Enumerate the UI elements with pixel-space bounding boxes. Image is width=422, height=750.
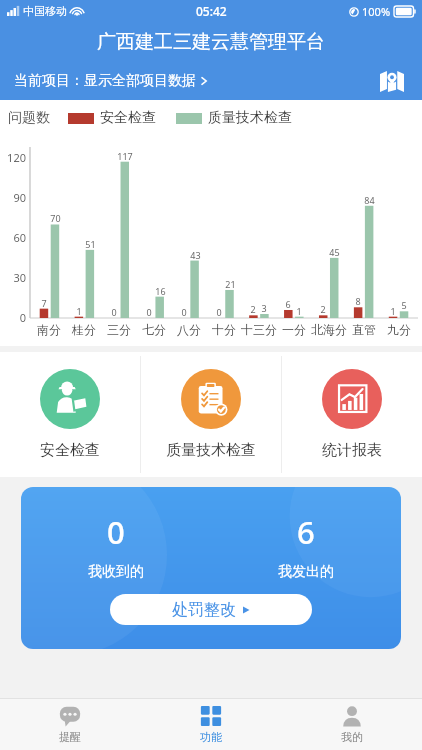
- staticText: 我发出的: [278, 563, 334, 581]
- staticText: 60: [13, 230, 26, 245]
- staticText: 中国移动: [23, 4, 67, 18]
- staticText: 一分: [282, 322, 306, 337]
- staticText: 16: [155, 285, 166, 297]
- staticText: 十分: [212, 322, 236, 337]
- button[interactable]: 功能: [140, 699, 281, 750]
- staticText: 问题数: [8, 109, 50, 127]
- staticText: 120: [7, 150, 26, 165]
- staticText: 7: [41, 297, 47, 309]
- staticText: 51: [85, 238, 96, 250]
- staticText: 30: [13, 270, 26, 285]
- button[interactable]: 我的: [281, 699, 422, 750]
- staticText: 0: [111, 306, 117, 318]
- staticText: 5: [401, 299, 407, 311]
- staticText: 100%: [362, 4, 391, 19]
- staticText: 广西建工三建云慧管理平台: [97, 30, 325, 54]
- staticText: 我收到的: [88, 563, 144, 581]
- staticText: 安全检查: [100, 109, 156, 127]
- staticText: 6: [285, 298, 291, 310]
- button[interactable]: 提醒: [0, 699, 140, 750]
- staticText: 70: [50, 212, 61, 224]
- button[interactable]: 质量技术检查: [141, 352, 281, 477]
- staticText: 七分: [142, 322, 166, 337]
- button[interactable]: 处罚整改: [110, 594, 312, 625]
- staticText: 功能: [200, 730, 222, 744]
- staticText: 提醒: [59, 730, 81, 744]
- staticText: 2: [320, 303, 326, 315]
- staticText: 统计报表: [322, 441, 382, 460]
- staticText: 三分: [107, 322, 131, 337]
- staticText: 质量技术检查: [208, 109, 292, 127]
- staticText: 0: [146, 306, 152, 318]
- button[interactable]: Map: [376, 65, 408, 97]
- staticText: 8: [355, 295, 361, 307]
- button[interactable]: 当前项目：显示全部项目数据: [14, 72, 210, 90]
- staticText: 0: [107, 511, 125, 553]
- staticText: 质量技术检查: [166, 441, 256, 460]
- staticText: 安全检查: [40, 441, 100, 460]
- staticText: 八分: [177, 322, 201, 337]
- staticText: 45: [329, 246, 340, 258]
- button[interactable]: 统计报表: [282, 352, 422, 477]
- staticText: 0: [216, 306, 222, 318]
- staticText: 0: [19, 310, 26, 325]
- button[interactable]: 安全检查: [0, 352, 140, 477]
- staticText: 南分: [37, 322, 61, 337]
- button[interactable]: 0: [21, 487, 401, 649]
- staticText: 43: [190, 249, 201, 261]
- staticText: 05:42: [196, 3, 227, 19]
- staticText: 桂分: [72, 322, 96, 337]
- staticText: 当前项目：显示全部项目数据: [14, 72, 196, 90]
- staticText: 21: [225, 278, 236, 290]
- staticText: 十三分: [241, 322, 277, 337]
- staticText: 2: [250, 303, 256, 315]
- staticText: 117: [117, 150, 133, 162]
- staticText: 0: [181, 306, 187, 318]
- staticText: 6: [297, 511, 315, 553]
- staticText: 北海分: [311, 322, 347, 337]
- staticText: 1: [390, 305, 396, 317]
- staticText: 处罚整改: [172, 600, 236, 620]
- staticText: 直管: [352, 322, 376, 337]
- staticText: 90: [13, 190, 26, 205]
- staticText: 我的: [341, 730, 363, 744]
- staticText: 3: [261, 302, 267, 314]
- staticText: 1: [76, 305, 82, 317]
- staticText: 九分: [387, 322, 411, 337]
- staticText: 1: [296, 305, 302, 317]
- staticText: 84: [364, 194, 375, 206]
